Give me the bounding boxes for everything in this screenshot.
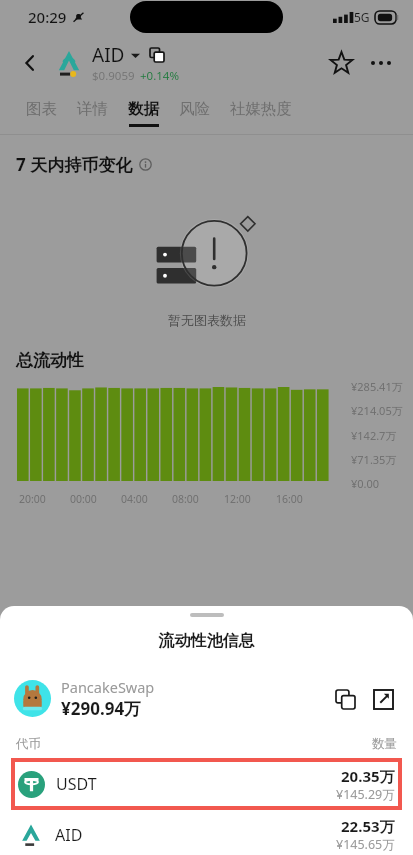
- staticText: $0.9059: [92, 68, 135, 84]
- button[interactable]: Back: [12, 45, 48, 81]
- staticText: AID: [92, 42, 125, 68]
- staticText: 12:00: [224, 492, 251, 506]
- staticText: 暂无图表数据: [168, 312, 246, 328]
- staticText: ¥285.41万: [351, 379, 403, 394]
- staticText: 社媒热度: [230, 99, 292, 119]
- button[interactable]: Favorite: [321, 43, 361, 83]
- staticText: PancakeSwap: [61, 677, 155, 697]
- staticText: 流动性池信息: [0, 631, 413, 651]
- staticText: ¥145.65万: [336, 836, 395, 853]
- staticText: 08:00: [172, 492, 199, 506]
- staticText: 20:29: [28, 7, 67, 27]
- staticText: 20.35万: [341, 766, 395, 786]
- button[interactable]: More options: [361, 43, 401, 83]
- staticText: 总流动性: [16, 350, 84, 371]
- button[interactable]: Copy: [148, 46, 166, 64]
- button[interactable]: 社媒热度: [220, 92, 302, 134]
- button[interactable]: Open external link: [367, 683, 399, 715]
- staticText: 数量: [372, 736, 397, 752]
- staticText: 图表: [26, 99, 57, 119]
- staticText: 22.53万: [341, 816, 395, 836]
- button[interactable]: 数据: [118, 92, 169, 134]
- staticText: 风险: [179, 99, 210, 119]
- staticText: 7 天内持币变化: [16, 153, 133, 176]
- button[interactable]: 详情: [67, 92, 118, 134]
- staticText: 数据: [128, 99, 159, 119]
- button[interactable]: 风险: [169, 92, 220, 134]
- staticText: 16:00: [276, 492, 303, 506]
- staticText: 20:00: [19, 492, 46, 506]
- staticText: ¥142.7万: [351, 428, 397, 443]
- staticText: ¥214.05万: [351, 403, 403, 418]
- button[interactable]: Copy address: [329, 683, 361, 715]
- staticText: 00:00: [70, 492, 97, 506]
- button[interactable]: USDT: [11, 758, 402, 810]
- staticText: ¥71.35万: [351, 452, 397, 467]
- button[interactable]: PancakeSwap: [14, 677, 399, 720]
- staticText: ¥290.94万: [61, 697, 142, 720]
- staticText: 5G: [354, 9, 370, 25]
- staticText: +0.14%: [140, 68, 179, 84]
- staticText: 代币: [16, 736, 41, 752]
- staticText: 详情: [77, 99, 108, 119]
- staticText: ¥0.00: [351, 476, 380, 491]
- staticText: AID: [55, 824, 83, 846]
- button[interactable]: AID: [18, 814, 395, 855]
- staticText: ¥145.29万: [336, 786, 395, 803]
- staticText: 04:00: [121, 492, 148, 506]
- button[interactable]: 图表: [16, 92, 67, 134]
- staticText: USDT: [56, 773, 97, 795]
